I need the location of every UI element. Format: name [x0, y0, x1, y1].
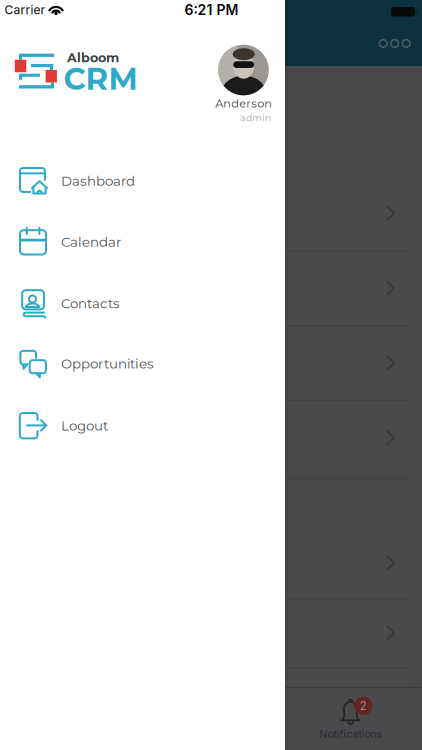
button[interactable]: Anderson [208, 39, 278, 131]
button[interactable] [13, 527, 409, 598]
staticText: Notifications [319, 727, 382, 740]
staticText: Anderson [215, 97, 272, 110]
staticText: Contacts [61, 295, 120, 312]
button[interactable]: Dashboard [0, 152, 285, 210]
staticText: CRM [63, 60, 137, 97]
staticText: Dashboard [61, 173, 135, 189]
staticText: Alboom [67, 50, 119, 65]
button[interactable] [13, 597, 409, 668]
button[interactable] [13, 253, 409, 324]
button[interactable] [13, 178, 409, 249]
button[interactable]: Opportunities [0, 335, 285, 393]
staticText: admin [240, 112, 271, 124]
button[interactable]: More [372, 30, 418, 56]
button[interactable]: Logout [0, 397, 285, 455]
button[interactable]: Calendar [0, 213, 285, 271]
staticText: Logout [61, 418, 108, 434]
button[interactable]: Contacts [0, 274, 285, 332]
staticText: 6:21 PM [184, 1, 238, 18]
button[interactable] [13, 327, 409, 398]
staticText: Opportunities [61, 355, 154, 372]
staticText: 2 [360, 699, 367, 713]
staticText: Calendar [61, 234, 121, 250]
staticText: Carrier [4, 3, 45, 17]
button[interactable] [13, 402, 409, 473]
button[interactable]: 2 [295, 689, 405, 749]
